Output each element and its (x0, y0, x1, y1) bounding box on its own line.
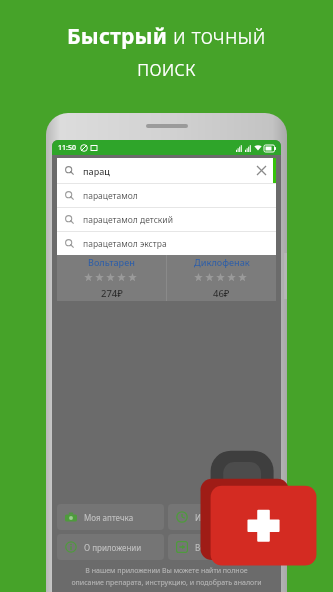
staticText: парацетамол (83, 190, 138, 202)
staticText: Диклофенак (194, 256, 250, 268)
button[interactable]: О приложении (57, 534, 164, 560)
staticText: описание препарата, инструкцию, и подобр… (71, 578, 262, 588)
staticText: Быстрый (67, 22, 167, 51)
staticText: И (195, 512, 202, 523)
button[interactable]: парацетамол экстра (57, 232, 276, 255)
staticText: 46₽ (213, 287, 230, 300)
staticText: Во (195, 542, 205, 553)
staticText: парацетамол экстра (83, 238, 167, 250)
button[interactable]: Диклофенак (167, 251, 276, 301)
button[interactable]: Вольтарен (57, 251, 166, 301)
staticText: О приложении (84, 542, 142, 553)
button[interactable]: Моя аптечка (57, 504, 164, 530)
staticText: поиск (137, 54, 196, 83)
button[interactable]: Во (168, 534, 276, 560)
button[interactable]: парацетамол (57, 184, 276, 207)
button[interactable]: Clear (257, 166, 266, 175)
button[interactable]: парацетамол детский (57, 208, 276, 231)
staticText: парац (83, 165, 110, 177)
staticText: и точный (173, 22, 266, 51)
button[interactable]: И (168, 504, 276, 530)
button[interactable]: First aid kit (198, 448, 324, 588)
staticText: 274₽ (101, 287, 123, 300)
staticText: Вольтарен (88, 256, 135, 268)
button[interactable]: парац (57, 158, 276, 183)
staticText: Моя аптечка (84, 512, 134, 523)
staticText: парацетамол детский (83, 214, 173, 226)
staticText: 11:50 (58, 143, 76, 153)
staticText: В нашем приложении Вы можете найти полно… (85, 566, 248, 576)
